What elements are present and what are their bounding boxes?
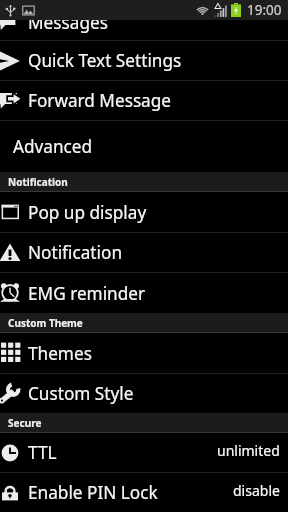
button[interactable]: Custom Style bbox=[0, 374, 288, 413]
button[interactable]: TTL bbox=[0, 433, 288, 472]
staticText: Enable PIN Lock bbox=[28, 481, 158, 504]
button[interactable]: Notification bbox=[0, 233, 288, 272]
button[interactable]: EMG reminder bbox=[0, 273, 288, 313]
button[interactable]: Enable PIN Lock bbox=[0, 473, 288, 512]
staticText: Messages bbox=[28, 11, 108, 34]
button[interactable]: Themes bbox=[0, 333, 288, 373]
staticText: Notification bbox=[28, 241, 122, 264]
staticText: Notification bbox=[8, 175, 68, 189]
staticText: Custom Theme bbox=[8, 316, 83, 330]
staticText: Secure bbox=[8, 416, 42, 430]
button[interactable]: Advanced bbox=[0, 121, 288, 172]
staticText: Pop up display bbox=[28, 201, 147, 224]
staticText: unlimited bbox=[217, 441, 280, 460]
button[interactable]: Quick Text Settings bbox=[0, 41, 288, 80]
button[interactable]: Pop up display bbox=[0, 192, 288, 232]
staticText: Advanced bbox=[13, 135, 93, 158]
staticText: Forward Message bbox=[28, 89, 172, 112]
staticText: EMG reminder bbox=[28, 282, 146, 305]
staticText: Themes bbox=[28, 342, 92, 365]
staticText: Custom Style bbox=[28, 382, 134, 405]
staticText: disable bbox=[233, 481, 280, 500]
staticText: Quick Text Settings bbox=[28, 49, 182, 72]
button[interactable]: Forward Message bbox=[0, 81, 288, 120]
staticText: 19:00 bbox=[247, 1, 282, 19]
staticText: TTL bbox=[28, 441, 57, 464]
button[interactable]: Messages bbox=[0, 2, 288, 42]
